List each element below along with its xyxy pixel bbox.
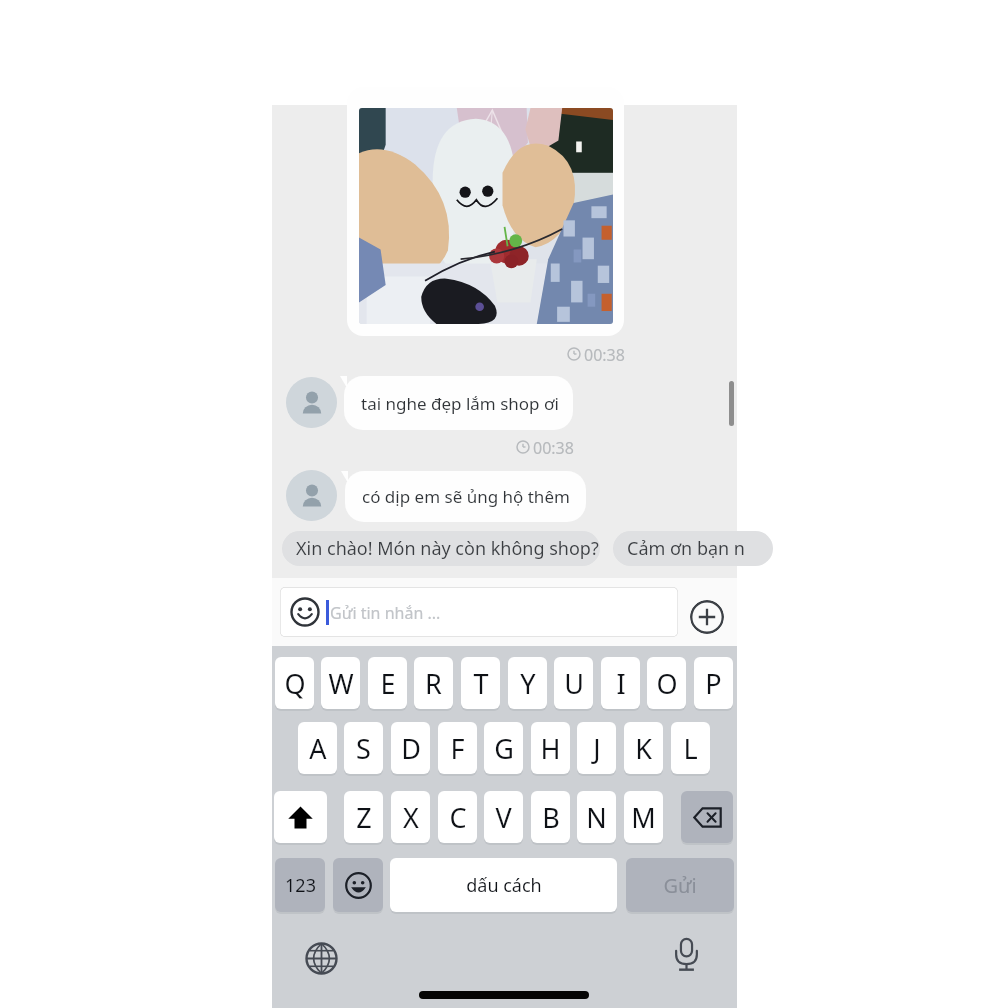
button[interactable]: Z <box>344 791 383 843</box>
staticText: Y <box>520 665 536 702</box>
staticText: I <box>616 665 626 702</box>
button[interactable]: X <box>391 791 430 843</box>
button[interactable]: R <box>414 657 453 709</box>
staticText: S <box>356 730 371 767</box>
button[interactable]: K <box>624 722 663 774</box>
staticText: D <box>401 730 421 767</box>
button[interactable]: G <box>484 722 523 774</box>
button[interactable]: M <box>624 791 663 843</box>
button[interactable]: Xin chào! Món này còn không shop? <box>282 531 600 566</box>
button[interactable]: Backspace <box>681 791 733 843</box>
button[interactable]: Shift <box>274 791 327 843</box>
button[interactable]: Contact avatar <box>286 377 337 428</box>
staticText: Gửi tin nhắn ... <box>330 602 441 624</box>
staticText: U <box>564 665 584 702</box>
staticText: K <box>635 730 652 767</box>
staticText: Gửi <box>663 872 697 899</box>
staticText: Z <box>356 799 372 836</box>
button[interactable]: Y <box>508 657 547 709</box>
button[interactable]: U <box>554 657 593 709</box>
button[interactable]: A <box>298 722 337 774</box>
staticText: M <box>631 799 656 836</box>
button[interactable]: Contact avatar <box>286 470 337 521</box>
button[interactable]: S <box>344 722 383 774</box>
staticText: B <box>542 799 560 836</box>
button[interactable]: N <box>577 791 616 843</box>
button[interactable]: Add attachment <box>690 600 724 634</box>
staticText: G <box>494 730 514 767</box>
staticText: A <box>309 730 327 767</box>
button[interactable]: Cảm ơn bạn n <box>613 531 773 566</box>
staticText: W <box>328 665 354 702</box>
button[interactable]: tai nghe đẹp lắm shop ơi <box>344 376 573 430</box>
button[interactable]: Voice input <box>668 936 705 973</box>
staticText: Cảm ơn bạn n <box>627 536 745 561</box>
button[interactable]: P <box>694 657 733 709</box>
button[interactable]: W <box>321 657 360 709</box>
staticText: dấu cách <box>466 873 542 898</box>
staticText: Q <box>284 665 306 702</box>
button[interactable]: Change keyboard language <box>305 942 338 975</box>
button[interactable]: C <box>438 791 477 843</box>
staticText: P <box>705 665 722 702</box>
button[interactable]: E <box>368 657 407 709</box>
staticText: F <box>450 730 465 767</box>
button[interactable]: Q <box>275 657 314 709</box>
staticText: J <box>593 730 601 767</box>
button[interactable]: H <box>531 722 570 774</box>
staticText: tai nghe đẹp lắm shop ơi <box>361 392 559 415</box>
staticText: H <box>540 730 561 767</box>
staticText: O <box>656 665 678 702</box>
button[interactable]: O <box>647 657 686 709</box>
button[interactable]: có dịp em sẽ ủng hộ thêm <box>345 471 586 522</box>
button[interactable]: Gửi <box>626 858 734 912</box>
staticText: E <box>380 665 396 702</box>
staticText: Xin chào! Món này còn không shop? <box>296 536 599 561</box>
button[interactable]: B <box>531 791 570 843</box>
staticText: L <box>683 730 698 767</box>
button[interactable]: Emoji <box>333 858 383 912</box>
button[interactable]: 123 <box>275 858 325 912</box>
button[interactable]: L <box>671 722 710 774</box>
button[interactable]: I <box>601 657 640 709</box>
staticText: N <box>586 799 607 836</box>
staticText: 00:38 <box>584 344 625 363</box>
staticText: R <box>425 665 442 702</box>
button[interactable]: Photo message <box>347 87 624 336</box>
staticText: T <box>473 665 489 702</box>
staticText: C <box>449 799 467 836</box>
button[interactable]: T <box>461 657 500 709</box>
button[interactable]: J <box>577 722 616 774</box>
button[interactable]: F <box>438 722 477 774</box>
button[interactable]: V <box>484 791 523 843</box>
button[interactable]: Gửi tin nhắn ... <box>280 587 678 637</box>
button[interactable]: D <box>391 722 430 774</box>
staticText: có dịp em sẽ ủng hộ thêm <box>362 485 570 508</box>
staticText: X <box>403 799 419 836</box>
button[interactable]: dấu cách <box>390 858 617 912</box>
staticText: 123 <box>285 873 316 898</box>
staticText: 00:38 <box>533 437 574 456</box>
staticText: V <box>495 799 512 836</box>
